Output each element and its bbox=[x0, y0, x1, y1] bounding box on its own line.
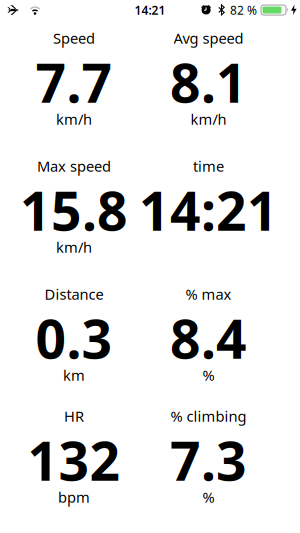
button[interactable]: Max speed bbox=[0, 158, 148, 255]
staticText: % climbing bbox=[170, 406, 246, 426]
staticText: 132 bbox=[27, 425, 120, 495]
staticText: Avg speed bbox=[173, 28, 243, 48]
staticText: time bbox=[193, 156, 224, 176]
button[interactable]: Avg speed bbox=[148, 30, 269, 127]
staticText: 15.8 bbox=[20, 175, 128, 245]
button[interactable]: % climbing bbox=[148, 408, 269, 505]
staticText: km bbox=[63, 365, 85, 385]
button[interactable]: % max bbox=[148, 286, 269, 383]
button[interactable]: Speed bbox=[0, 30, 148, 127]
staticText: % max bbox=[185, 284, 231, 304]
staticText: % bbox=[202, 487, 214, 507]
staticText: 8.4 bbox=[170, 303, 247, 373]
staticText: 0.3 bbox=[35, 303, 112, 373]
staticText: km/h bbox=[56, 109, 92, 129]
button[interactable]: time bbox=[148, 158, 269, 255]
staticText: 7.7 bbox=[35, 47, 112, 117]
staticText: 8.1 bbox=[170, 47, 247, 117]
button[interactable]: Distance bbox=[0, 286, 148, 383]
staticText: Max speed bbox=[37, 156, 111, 176]
staticText: 14:21 bbox=[134, 2, 165, 18]
button[interactable]: HR bbox=[0, 408, 148, 505]
staticText: Distance bbox=[44, 284, 103, 304]
staticText: Speed bbox=[53, 28, 95, 48]
staticText: % bbox=[202, 365, 214, 385]
staticText: HR bbox=[64, 406, 84, 426]
staticText: 14:21 bbox=[139, 175, 278, 245]
staticText: 7.3 bbox=[170, 425, 247, 495]
staticText: 82 % bbox=[230, 2, 257, 18]
staticText: km/h bbox=[56, 237, 92, 257]
staticText: km/h bbox=[190, 109, 226, 129]
staticText: bpm bbox=[58, 487, 90, 507]
